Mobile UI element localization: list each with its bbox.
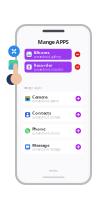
staticText: Phone bbox=[32, 126, 45, 132]
staticText: Message bbox=[32, 142, 49, 148]
button[interactable]: Phone bbox=[23, 124, 83, 137]
staticText: com.android.message bbox=[32, 148, 61, 151]
button[interactable]: Recorder bbox=[24, 61, 72, 72]
staticText: Albums bbox=[33, 50, 49, 55]
staticText: com.android.recorder bbox=[33, 68, 63, 71]
button[interactable]: Remove Albums bbox=[75, 51, 80, 57]
button[interactable]: Albums bbox=[24, 49, 72, 60]
staticText: Recorder bbox=[33, 63, 52, 68]
staticText: com.android.camera bbox=[32, 99, 58, 103]
button[interactable]: MORE bbox=[44, 168, 62, 173]
button[interactable]: Message bbox=[23, 140, 83, 153]
button[interactable]: Contacts bbox=[23, 108, 83, 121]
staticText: MORE bbox=[49, 169, 57, 172]
button[interactable]: Camera bbox=[23, 92, 83, 105]
staticText: Contacts bbox=[32, 110, 51, 116]
staticText: com.android.gallery bbox=[33, 55, 60, 59]
staticText: Mange APPS bbox=[38, 38, 69, 46]
staticText: Camera bbox=[32, 94, 47, 99]
button[interactable]: Remove Recorder bbox=[75, 64, 80, 70]
staticText: Manage Apps bbox=[24, 86, 42, 90]
staticText: com.android.contacts bbox=[32, 116, 60, 119]
staticText: com.android.phone bbox=[32, 132, 60, 135]
